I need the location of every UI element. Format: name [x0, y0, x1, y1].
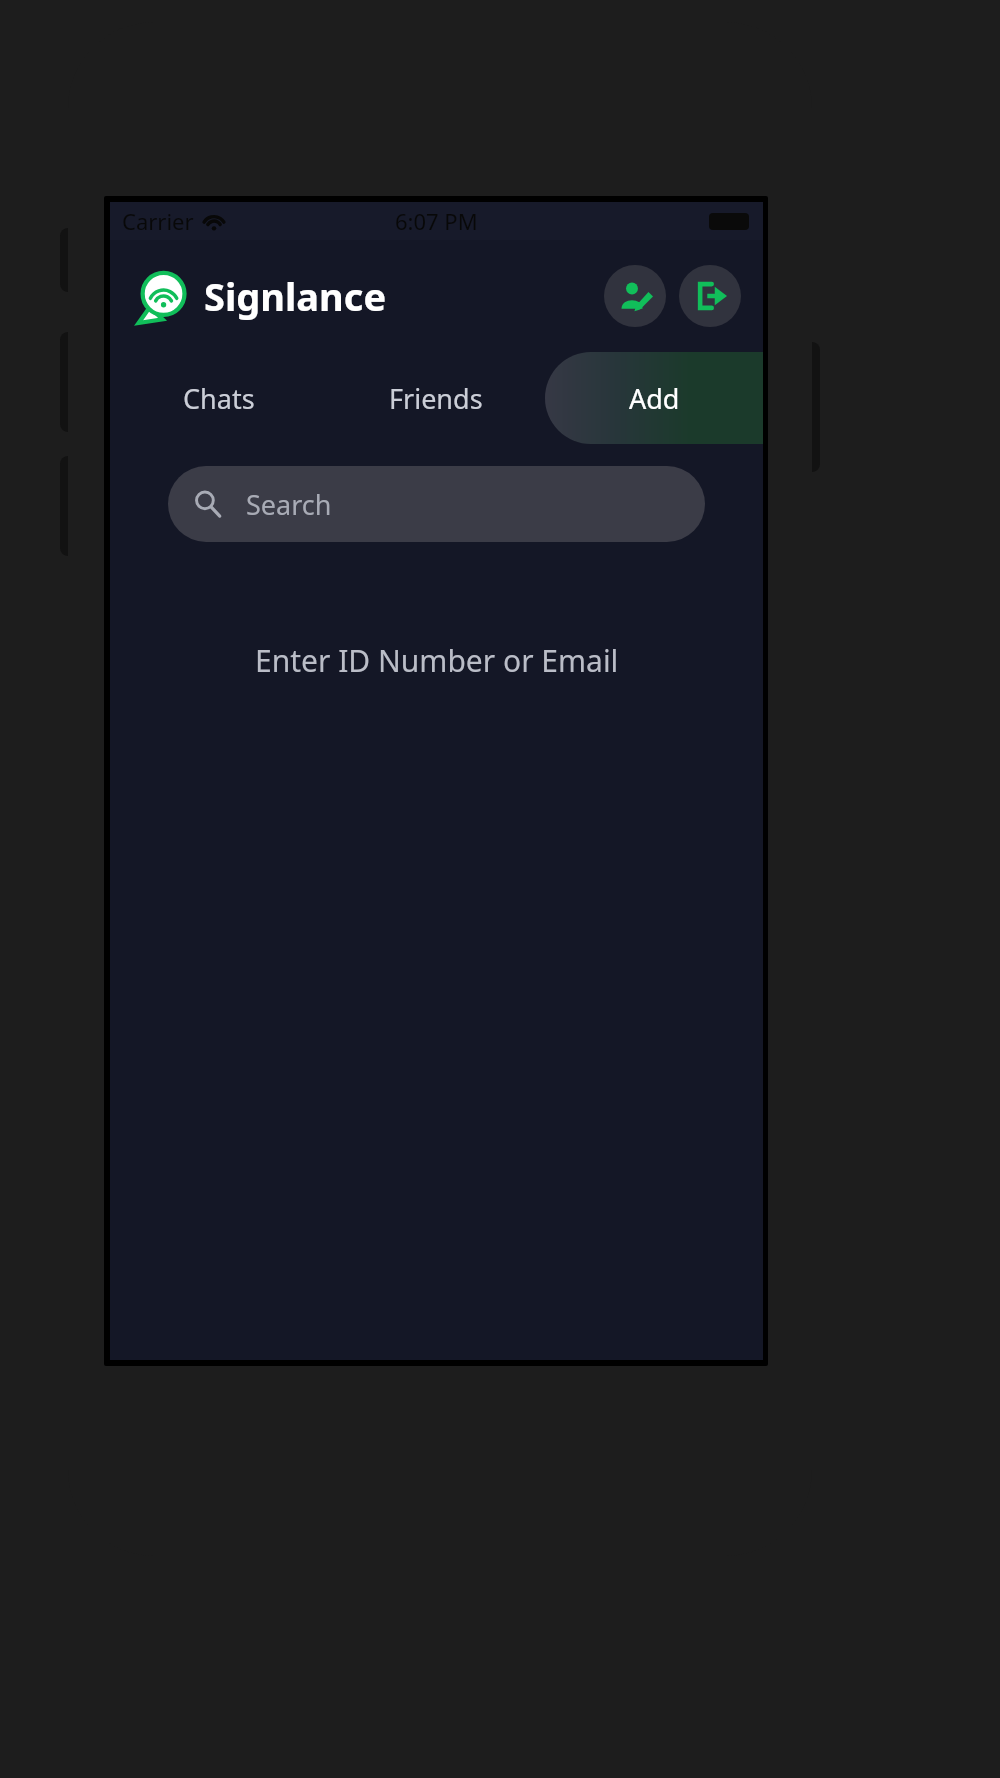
button[interactable]: Search	[168, 466, 705, 542]
button[interactable]: Friends	[327, 352, 545, 444]
staticText: Carrier	[122, 206, 194, 236]
button[interactable]: Add	[545, 352, 763, 444]
staticText: Search	[246, 486, 332, 523]
staticText: Add	[629, 380, 680, 417]
button[interactable]: Edit profile	[604, 265, 666, 327]
button[interactable]: Log out	[679, 265, 741, 327]
button[interactable]: Chats	[110, 352, 327, 444]
staticText: 6:07 PM	[395, 206, 478, 236]
staticText: Friends	[389, 380, 483, 417]
staticText: Signlance	[204, 270, 387, 322]
staticText: Chats	[183, 380, 255, 417]
staticText: Enter ID Number or Email	[255, 640, 619, 681]
